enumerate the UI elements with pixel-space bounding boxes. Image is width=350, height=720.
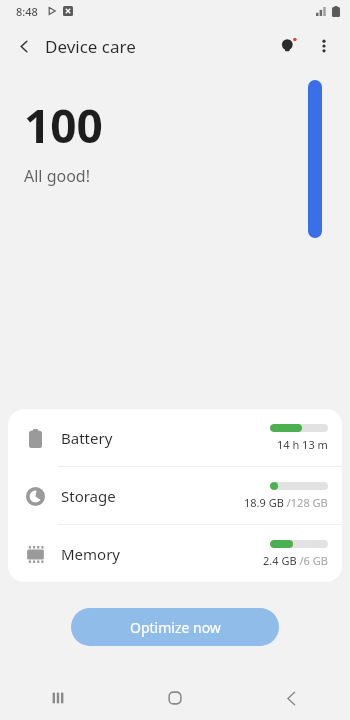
button[interactable]: Optimize now	[71, 608, 279, 646]
button[interactable]: Storage	[8, 467, 342, 524]
staticText: Storage	[61, 486, 244, 506]
staticText: Optimize now	[130, 618, 221, 637]
staticText: Device care	[45, 35, 136, 58]
staticText: 14 h 13 m	[277, 437, 328, 452]
button[interactable]: Back	[233, 676, 350, 720]
staticText: All good!	[24, 165, 90, 187]
button[interactable]: Tips	[270, 28, 306, 64]
button[interactable]: More options	[306, 28, 342, 64]
staticText: 8:48	[16, 4, 38, 19]
staticText: Memory	[61, 544, 263, 564]
staticText: 100	[24, 94, 103, 157]
staticText: 2.4 GB /6 GB	[263, 553, 328, 568]
staticText: 18.9 GB /128 GB	[244, 495, 328, 510]
button[interactable]: Memory	[8, 525, 342, 582]
button[interactable]: Home	[116, 676, 233, 720]
button[interactable]: Battery	[8, 409, 342, 466]
button[interactable]: Recents	[0, 676, 116, 720]
button[interactable]: Back	[10, 32, 38, 60]
staticText: Battery	[61, 428, 270, 448]
